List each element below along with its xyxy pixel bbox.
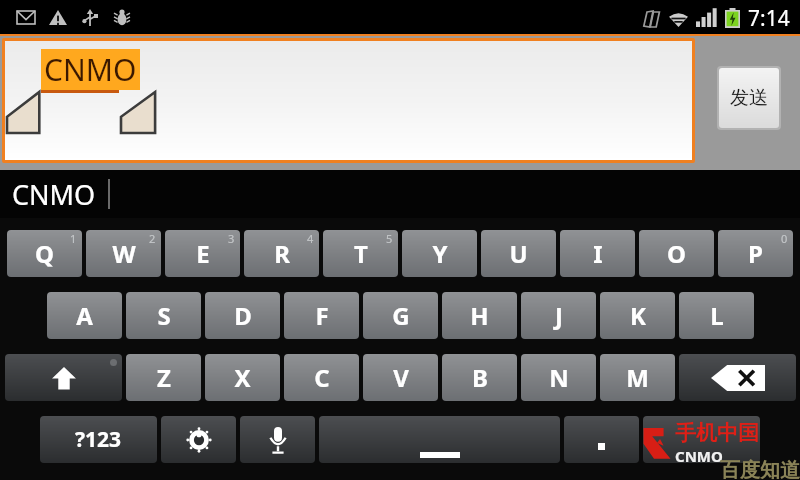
staticText: 百度知道 [720,458,800,480]
button[interactable]: Enter [643,416,760,463]
staticText: Q [35,237,54,270]
staticText: H [470,299,489,332]
staticText: S [157,299,171,332]
button[interactable]: O [639,230,714,277]
button[interactable]: J [521,292,596,339]
button[interactable]: D [205,292,280,339]
button[interactable]: E [165,230,240,277]
staticText: CNMO [675,446,723,466]
staticText: U [509,237,528,270]
button[interactable]: P [718,230,793,277]
button[interactable]: Shift [5,354,122,401]
button[interactable]: CNMO [0,170,108,218]
button[interactable]: B [442,354,517,401]
staticText: K [630,299,646,332]
staticText: C [314,361,330,394]
staticText: CNMO [12,176,96,213]
button[interactable]: Space [319,416,560,463]
staticText: Z [157,361,171,394]
button[interactable]: M [600,354,675,401]
button[interactable]: U [481,230,556,277]
staticText: P [748,237,763,270]
staticText: X [234,361,251,394]
staticText: 7:14 [748,4,790,33]
staticText: Y [432,237,448,270]
staticText: 2 [149,231,156,246]
staticText: 3 [228,231,235,246]
button[interactable]: S [126,292,201,339]
button[interactable]: T [323,230,398,277]
staticText: R [274,237,290,270]
staticText: W [112,237,136,270]
button[interactable]: R [244,230,319,277]
button[interactable]: H [442,292,517,339]
staticText: F [315,299,329,332]
staticText: O [667,237,686,270]
button[interactable]: CNMO [5,41,692,160]
staticText: 0 [781,231,788,246]
staticText: N [549,361,569,394]
staticText: L [710,299,724,332]
staticText: 1 [70,231,77,246]
button[interactable]: Input method settings [161,416,236,463]
staticText: A [76,299,93,332]
button[interactable]: X [205,354,280,401]
staticText: J [555,299,563,332]
button[interactable]: W [86,230,161,277]
button[interactable]: Voice input [240,416,315,463]
staticText: ?123 [75,425,122,454]
button[interactable]: F [284,292,359,339]
staticText: E [196,237,210,270]
staticText: I [593,237,603,270]
button[interactable]: I [560,230,635,277]
staticText: T [354,237,368,270]
staticText: 4 [307,231,314,246]
button[interactable]: Z [126,354,201,401]
button[interactable]: K [600,292,675,339]
button[interactable]: Y [402,230,477,277]
staticText: 5 [386,231,393,246]
button[interactable]: Backspace [679,354,796,401]
button[interactable]: L [679,292,754,339]
button[interactable]: Q [7,230,82,277]
staticText: 发送 [730,86,768,110]
staticText: M [626,361,649,394]
staticText: B [472,361,488,394]
staticText: 手机中国 [675,420,759,446]
button[interactable]: 发送 [719,68,779,128]
button[interactable]: A [47,292,122,339]
staticText: V [393,361,409,394]
button[interactable]: N [521,354,596,401]
button[interactable]: C [284,354,359,401]
button[interactable]: G [363,292,438,339]
staticText: G [392,299,410,332]
staticText: CNMO [44,49,137,90]
staticText: D [234,299,252,332]
button[interactable]: V [363,354,438,401]
button[interactable]: Period [564,416,639,463]
button[interactable]: ?123 [40,416,157,463]
